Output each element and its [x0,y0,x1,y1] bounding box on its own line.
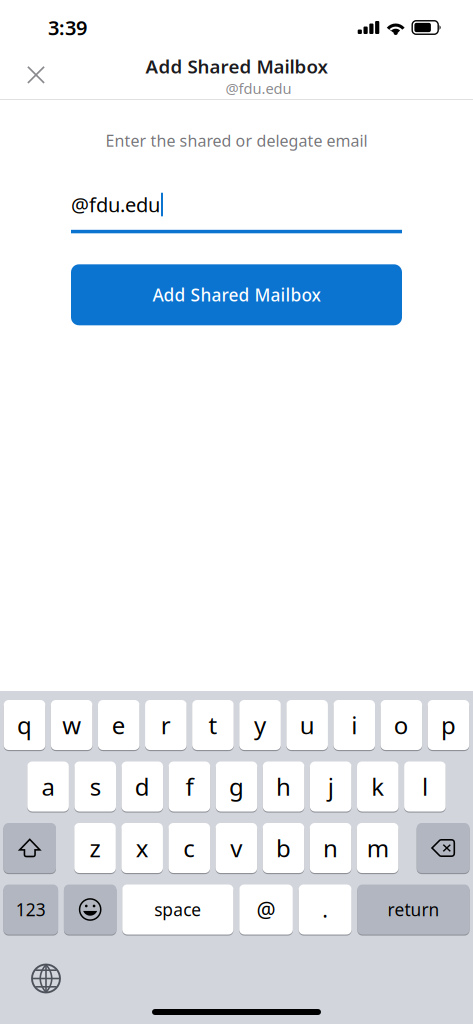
button[interactable]: Shift [3,823,56,873]
staticText: s [90,771,101,802]
staticText: @fdu.edu [71,191,160,218]
button[interactable]: v [216,823,257,873]
staticText: c [183,832,195,864]
button[interactable]: . [299,884,352,934]
button[interactable]: n [310,823,351,873]
staticText: g [229,771,244,802]
button[interactable]: @ [239,884,293,934]
staticText: . [322,895,328,924]
staticText: w [62,709,81,741]
staticText: r [161,709,171,741]
button[interactable]: x [121,823,163,873]
button[interactable]: p [428,700,469,750]
button[interactable]: h [263,761,304,811]
staticText: a [42,771,55,802]
staticText: f [185,771,193,802]
button[interactable]: Emoji [64,884,116,934]
button[interactable]: z [74,823,116,873]
button[interactable]: Next keyboard [23,955,69,1001]
button[interactable]: l [404,761,446,811]
staticText: space [154,898,201,921]
button[interactable]: a [27,761,69,811]
button[interactable]: t [192,700,234,750]
staticText: e [112,709,126,741]
staticText: n [323,832,338,864]
staticText: k [371,771,384,802]
staticText: v [230,832,242,864]
staticText: o [394,709,409,741]
staticText: return [387,898,439,921]
button[interactable]: j [310,761,351,811]
button[interactable]: Delete [417,823,469,873]
staticText: @ [257,895,276,924]
staticText: z [89,832,100,864]
button[interactable]: Add Shared Mailbox [71,264,402,325]
button[interactable]: return [357,884,469,934]
button[interactable]: s [74,761,116,811]
staticText: l [422,771,428,802]
staticText: Add Shared Mailbox [152,283,320,306]
button[interactable]: q [4,700,45,750]
button[interactable]: d [121,761,163,811]
button[interactable]: c [168,823,210,873]
button[interactable]: g [216,761,257,811]
staticText: u [300,709,315,741]
staticText: p [441,709,456,741]
button[interactable]: b [263,823,304,873]
button[interactable]: u [286,700,328,750]
staticText: Add Shared Mailbox [145,54,327,79]
staticText: j [328,771,334,802]
button[interactable]: m [357,823,398,873]
button[interactable]: w [51,700,92,750]
staticText: m [367,832,389,864]
staticText: y [254,709,266,741]
staticText: i [351,709,357,741]
staticText: b [276,832,291,864]
staticText: 123 [16,898,46,921]
staticText: t [208,709,217,741]
button[interactable]: y [239,700,281,750]
button[interactable]: i [333,700,375,750]
staticText: h [276,771,291,802]
staticText: Enter the shared or delegate email [105,130,367,151]
staticText: q [17,709,32,741]
button[interactable]: space [122,884,233,934]
button[interactable]: 123 [3,884,58,934]
button[interactable]: k [357,761,399,811]
staticText: x [136,832,149,864]
button[interactable]: e [98,700,139,750]
staticText: d [135,771,150,802]
button[interactable]: f [169,761,210,811]
button[interactable]: Close [13,52,59,98]
button[interactable]: o [381,700,422,750]
staticText: 3:39 [48,14,87,41]
button[interactable]: r [145,700,187,750]
staticText: @fdu.edu [225,79,291,98]
